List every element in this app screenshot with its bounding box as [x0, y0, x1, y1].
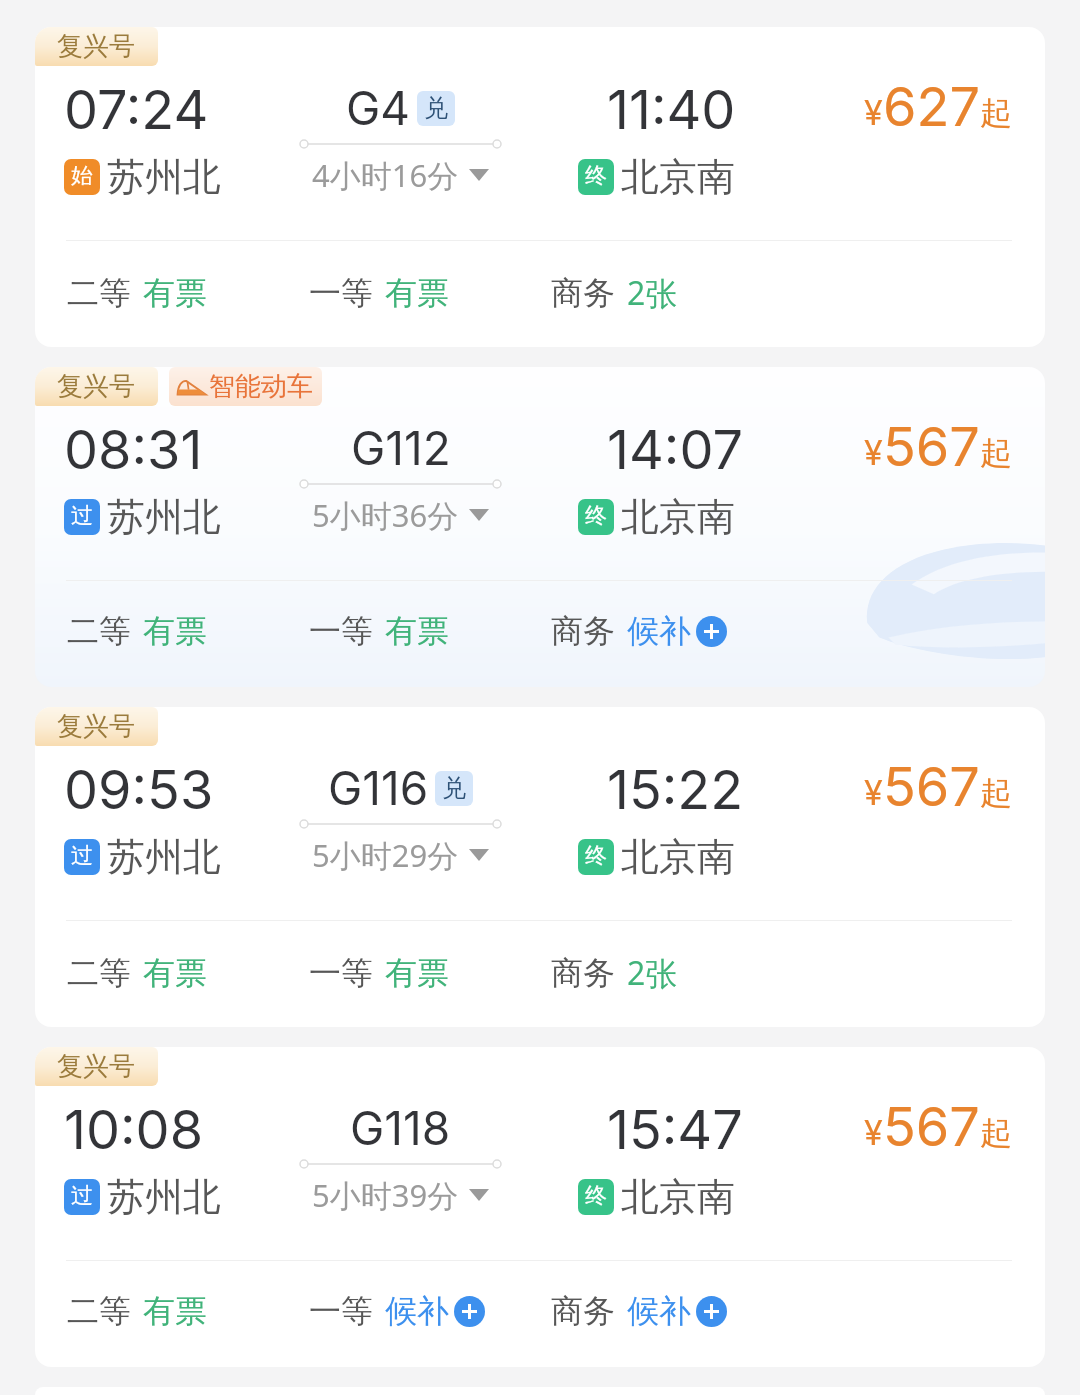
staticText: G118: [350, 1100, 451, 1156]
staticText: 5小时39分: [312, 1174, 459, 1216]
staticText: ¥: [864, 772, 883, 813]
staticText: 07:24: [64, 77, 209, 142]
staticText: 候补: [627, 611, 691, 651]
staticText: 有票: [385, 611, 449, 651]
staticText: 终: [585, 1182, 607, 1210]
staticText: 兑: [424, 93, 448, 123]
button[interactable]: ¥: [864, 754, 1012, 819]
staticText: 2张: [627, 271, 678, 315]
staticText: 复兴号: [57, 1050, 135, 1083]
staticText: 商务: [551, 1291, 615, 1331]
button[interactable]: 添加候补: [696, 1296, 727, 1327]
staticText: 终: [585, 502, 607, 530]
staticText: 627: [883, 74, 980, 139]
button[interactable]: 商务: [551, 1283, 727, 1339]
staticText: 567: [883, 754, 980, 819]
staticText: 有票: [385, 953, 449, 993]
staticText: 复兴号: [57, 370, 135, 403]
button[interactable]: 商务: [551, 263, 678, 323]
button[interactable]: 商务: [551, 943, 678, 1003]
staticText: 复兴号: [57, 30, 135, 63]
staticText: 候补: [627, 1291, 691, 1331]
staticText: 2张: [627, 951, 678, 995]
staticText: 过: [71, 1182, 93, 1210]
button[interactable]: 二等: [67, 945, 207, 1001]
button[interactable]: 复兴号: [35, 367, 1045, 687]
staticText: 商务: [551, 273, 615, 313]
staticText: 二等: [67, 611, 131, 651]
button[interactable]: 一等: [309, 603, 449, 659]
staticText: 一等: [309, 953, 373, 993]
staticText: 商务: [551, 953, 615, 993]
staticText: 北京南: [621, 153, 735, 201]
staticText: 起: [980, 433, 1012, 473]
staticText: 09:53: [64, 757, 214, 822]
staticText: 有票: [143, 273, 207, 313]
staticText: 二等: [67, 273, 131, 313]
staticText: 二等: [67, 1291, 131, 1331]
staticText: G116: [328, 760, 429, 816]
staticText: 北京南: [621, 833, 735, 881]
staticText: 一等: [309, 273, 373, 313]
button[interactable]: ¥: [864, 414, 1012, 479]
staticText: 11:40: [607, 77, 736, 142]
button[interactable]: 复兴号: [35, 707, 1045, 1027]
staticText: 过: [71, 842, 93, 870]
staticText: 一等: [309, 611, 373, 651]
button[interactable]: 复兴号: [35, 1047, 1045, 1367]
staticText: 有票: [143, 1291, 207, 1331]
staticText: 08:31: [64, 417, 203, 482]
staticText: 终: [585, 842, 607, 870]
staticText: 15:47: [607, 1097, 743, 1162]
staticText: 北京南: [621, 1173, 735, 1221]
staticText: 候补: [385, 1291, 449, 1331]
staticText: 4小时16分: [312, 154, 459, 196]
button[interactable]: 展开经停站 5小时29分: [312, 834, 489, 876]
button[interactable]: 添加候补: [454, 1296, 485, 1327]
staticText: 过: [71, 502, 93, 530]
button[interactable]: ¥: [864, 74, 1012, 139]
staticText: 5小时29分: [312, 834, 459, 876]
button[interactable]: 二等: [67, 603, 207, 659]
staticText: 苏州北: [107, 153, 221, 201]
button[interactable]: 二等: [67, 1283, 207, 1339]
staticText: 二等: [67, 953, 131, 993]
staticText: 567: [883, 1094, 980, 1159]
staticText: 兑: [442, 773, 466, 803]
button[interactable]: 一等: [309, 945, 449, 1001]
staticText: 智能动车: [209, 370, 313, 403]
staticText: G112: [351, 420, 451, 476]
staticText: 复兴号: [57, 710, 135, 743]
button[interactable]: 一等: [309, 265, 449, 321]
staticText: ¥: [864, 432, 883, 473]
staticText: 有票: [385, 273, 449, 313]
button[interactable]: 复兴号: [35, 27, 1045, 347]
button[interactable]: ¥: [864, 1094, 1012, 1159]
staticText: 始: [71, 162, 93, 190]
button[interactable]: 一等: [309, 1283, 485, 1339]
staticText: ¥: [864, 1112, 883, 1153]
staticText: 14:07: [607, 417, 743, 482]
button[interactable]: 展开经停站 5小时39分: [312, 1174, 489, 1216]
button[interactable]: 二等: [67, 265, 207, 321]
staticText: 起: [980, 1113, 1012, 1153]
staticText: ¥: [864, 92, 883, 133]
staticText: 15:22: [607, 757, 744, 822]
staticText: 终: [585, 162, 607, 190]
staticText: 苏州北: [107, 1173, 221, 1221]
staticText: 一等: [309, 1291, 373, 1331]
staticText: G4: [346, 80, 411, 136]
staticText: 有票: [143, 953, 207, 993]
staticText: 5小时36分: [312, 494, 459, 536]
staticText: 苏州北: [107, 833, 221, 881]
staticText: 567: [883, 414, 980, 479]
button[interactable]: 添加候补: [696, 616, 727, 647]
button[interactable]: 展开经停站 5小时36分: [312, 494, 489, 536]
staticText: 商务: [551, 611, 615, 651]
staticText: 北京南: [621, 493, 735, 541]
button[interactable]: 展开经停站 4小时16分: [312, 154, 489, 196]
button[interactable]: 商务: [551, 603, 727, 659]
staticText: 有票: [143, 611, 207, 651]
staticText: 起: [980, 773, 1012, 813]
staticText: 起: [980, 93, 1012, 133]
